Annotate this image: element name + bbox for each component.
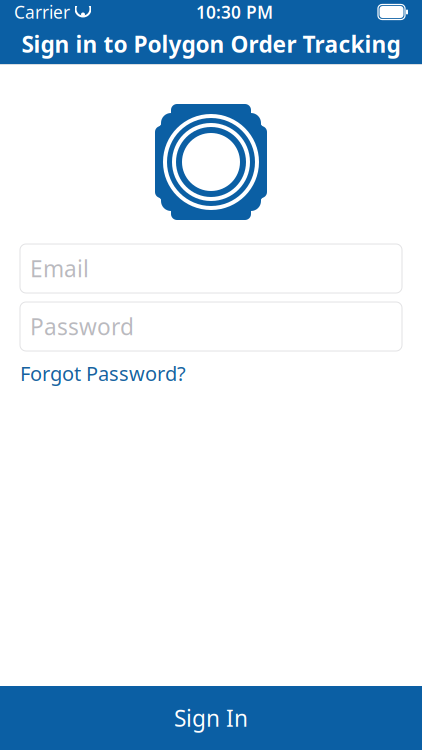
button[interactable]: Email [20,244,402,293]
button[interactable]: Forgot Password? [20,356,186,391]
staticText: Carrier [14,0,70,23]
staticText: Forgot Password? [20,360,186,387]
button[interactable]: Password [20,302,402,351]
staticText: 10:30 PM [196,0,273,23]
staticText: Sign In [174,703,248,733]
staticText: Email [30,253,89,283]
staticText: Sign in to Polygon Order Tracking [21,29,400,59]
staticText: Password [30,311,134,341]
button[interactable]: Sign In [0,686,422,750]
